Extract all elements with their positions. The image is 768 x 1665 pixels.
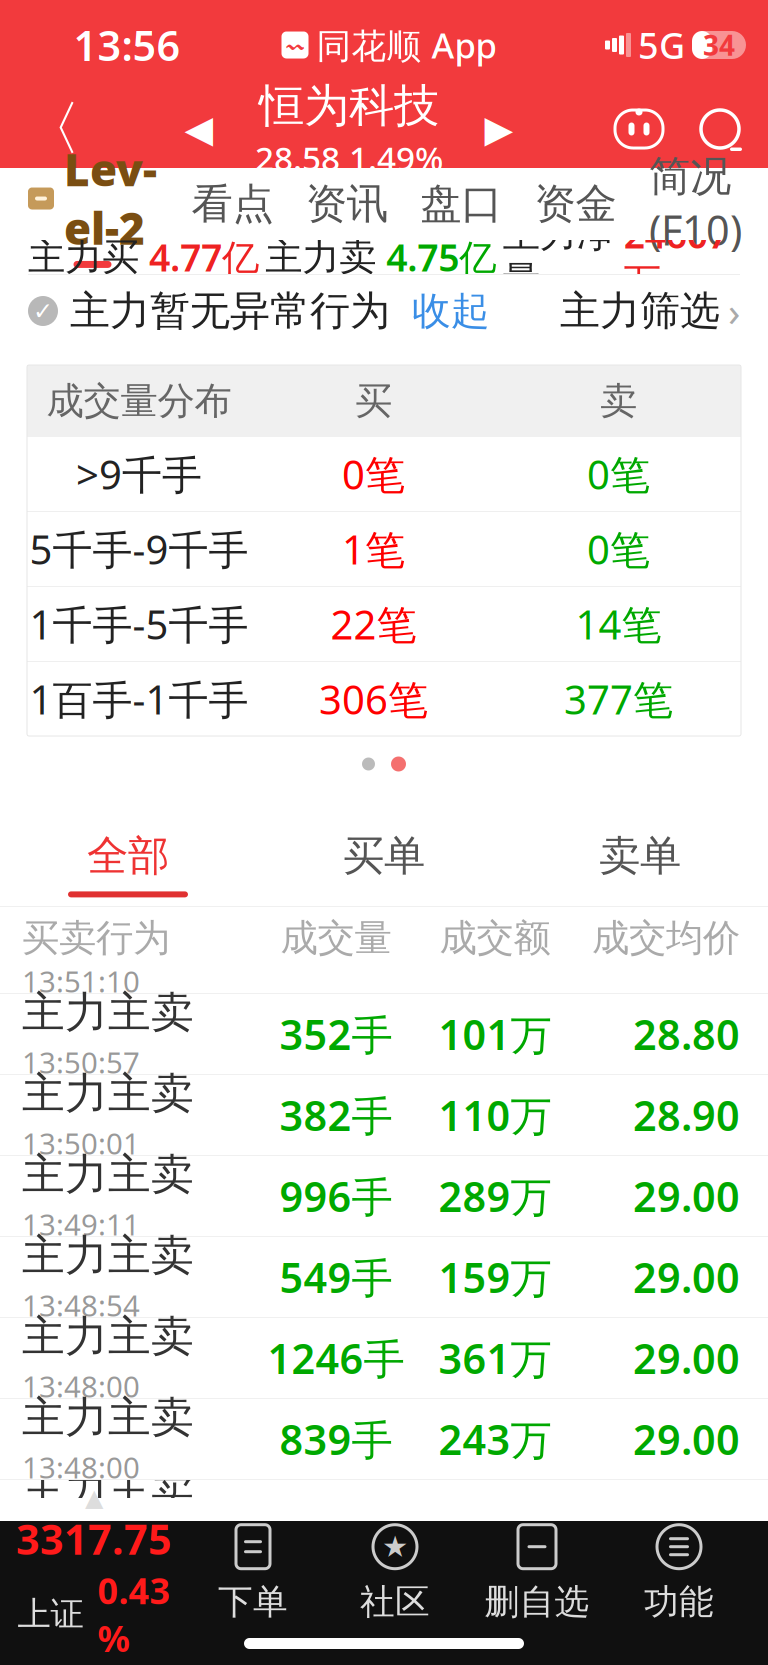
button[interactable]: ★ [324,1523,466,1623]
staticText: 29.00 [633,1412,740,1466]
button[interactable]: 资讯 [294,168,400,240]
button[interactable]: 上一只股票 [164,90,234,168]
staticText: 主力主卖 [22,1391,194,1444]
button[interactable]: 恒为科技 [234,90,464,168]
button[interactable]: 功能 [608,1523,750,1623]
staticText: 恒为科技 [259,78,439,134]
staticText: 1千手-5千手 [29,597,248,650]
button[interactable]: 智能助手 [600,90,678,168]
button[interactable]: 主力筛选 [560,284,740,337]
staticText: 101万 [438,1007,551,1061]
staticText: 〰 [286,33,303,57]
staticText: 243万 [438,1412,551,1466]
staticText: >9千手 [76,447,202,500]
button[interactable]: 主力主卖 [0,1156,768,1237]
button[interactable]: 卖单 [512,822,768,906]
staticText: 14笔 [575,597,661,650]
button[interactable]: 资金 [523,168,629,240]
staticText: 成交量 [280,915,391,961]
staticText: ◀ [184,108,213,150]
staticText: 377笔 [564,672,673,725]
staticText: 主力主卖 [22,1310,194,1363]
button[interactable]: 主力主卖 [0,1075,768,1156]
staticText: 买单 [343,831,425,881]
button[interactable]: ✓ [28,286,490,335]
staticText: ✓ [33,297,53,325]
button[interactable]: 删自选 [466,1523,608,1623]
staticText: 28.80 [633,1007,740,1061]
staticText: 839手 [279,1412,392,1466]
staticText: 13:48:54 [22,1286,140,1325]
staticText: 29.00 [633,1331,740,1385]
staticText: 看点 [191,179,273,229]
staticText: 1246手 [267,1331,404,1385]
button[interactable]: 搜索 [678,90,762,168]
staticText: › [728,284,740,337]
staticText: 成交额 [439,915,550,961]
staticText: 资讯 [306,179,388,229]
staticText: 主力主卖 [22,986,194,1039]
staticText: 4.75亿 [386,232,496,282]
staticText: 5G [638,21,685,69]
staticText: 删自选 [484,1581,589,1623]
button[interactable]: 主力主卖 [0,994,768,1075]
staticText: 上证 [17,1594,83,1634]
staticText: 28.58 1.49% [255,136,443,180]
button[interactable]: 下一只股票 [464,90,534,168]
staticText: 4.77亿 [149,232,259,282]
button[interactable]: 盘口 [408,168,514,240]
staticText: 主力卖 [265,234,376,280]
staticText: 306笔 [319,672,428,725]
staticText: 成交量分布 [46,378,231,424]
staticText: 全部 [87,831,169,881]
staticText: Level-2 [64,140,157,257]
staticText: 主力主卖 [22,1148,194,1201]
staticText: 549手 [279,1250,392,1304]
button[interactable]: 看点 [179,168,285,240]
staticText: 110万 [438,1088,551,1142]
staticText: ▲ [85,1484,103,1511]
button[interactable]: 主力主卖 [0,1399,768,1480]
button[interactable]: 主力主卖 [0,1237,768,1318]
staticText: 1百手-1千手 [29,672,248,725]
staticText: 0笔 [587,447,650,500]
staticText: 买卖行为 [22,915,170,961]
staticText: 主力主卖 [22,1229,194,1282]
staticText: 资金 [535,179,617,229]
staticText: 主力主卖 [22,1067,194,1120]
staticText: 382手 [279,1088,392,1142]
staticText: 盘口 [420,179,502,229]
staticText: 13:51:10 [22,961,140,1000]
staticText: 22笔 [330,597,416,650]
staticText: 13:49:11 [22,1205,140,1244]
button[interactable]: 返回 [6,90,98,168]
staticText: 0笔 [587,522,650,575]
staticText: 159万 [438,1250,551,1304]
staticText: 〈 [22,93,81,165]
staticText: 24607万 [624,209,729,305]
staticText: 功能 [644,1581,714,1623]
button[interactable]: 主力主卖 [0,1318,768,1399]
button[interactable]: 买单 [256,822,512,906]
staticText: 主力买 [28,234,139,280]
staticText: 13:48:00 [22,1448,140,1487]
button[interactable]: ▲ [6,1484,182,1662]
staticText: 简况(F10) [649,151,742,257]
staticText: 29.00 [633,1250,740,1304]
button[interactable]: 全部 [0,822,256,906]
button[interactable]: 简况(F10) [637,168,754,240]
staticText: 同花顺 App [316,22,496,68]
staticText: 289万 [438,1169,551,1223]
staticText: 0.43% [97,1566,170,1662]
staticText: 13:50:57 [22,1043,140,1082]
staticText: ★ [382,1530,408,1563]
staticText: 361万 [438,1331,551,1385]
staticText: 买 [355,378,392,424]
staticText: 29.00 [633,1169,740,1223]
staticText: 34 [703,26,735,64]
button[interactable]: 下单 [182,1523,324,1623]
staticText: 卖 [600,378,637,424]
staticText: 下单 [218,1581,288,1623]
staticText: 收起 [412,287,490,335]
button[interactable]: Level-2 [0,168,171,240]
